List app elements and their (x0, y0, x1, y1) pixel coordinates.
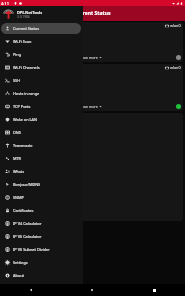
staticText: IP V6 Subnet Divider (13, 247, 50, 252)
staticText: Ping (13, 52, 22, 57)
button[interactable]: Hosts in range (1, 88, 81, 99)
button[interactable]: show more (79, 55, 102, 60)
staticText: Settings (13, 260, 28, 265)
staticText: wlan0 (170, 65, 181, 70)
button[interactable]: DNS (1, 127, 81, 138)
button[interactable]: IP V6 Calculator (1, 231, 81, 242)
button[interactable]: MTR (1, 153, 81, 164)
button[interactable]: IP V4 Calculator (1, 218, 81, 229)
button[interactable]: Traceroute (1, 140, 81, 151)
staticText: IP V4 Calculator (13, 221, 42, 226)
button[interactable]: Ping (1, 49, 81, 60)
button[interactable]: About (1, 270, 81, 281)
button[interactable]: SSH (1, 75, 81, 86)
button[interactable]: Wake on LAN (1, 114, 81, 125)
staticText: Whois (13, 169, 25, 174)
staticText: Wake on LAN (13, 117, 37, 122)
staticText: Bonjour/MDNS (13, 182, 41, 187)
staticText: MTR (13, 156, 22, 161)
button[interactable]: IP V6 Subnet Divider (1, 244, 81, 255)
button[interactable]: wlan0 (165, 65, 181, 70)
staticText: Wi-Fi Scan (13, 39, 32, 44)
button[interactable]: show more (79, 104, 102, 109)
staticText: Certificates (13, 208, 34, 213)
staticText: DNS (13, 130, 21, 135)
staticText: show more (79, 55, 98, 60)
button[interactable]: Bonjour/MDNS (1, 179, 81, 190)
staticText: 3.0.1984 (17, 15, 30, 19)
button[interactable]: SNMP (1, 192, 81, 203)
staticText: SNMP (13, 195, 24, 200)
button[interactable]: Home (61, 284, 123, 296)
staticText: show more (79, 104, 98, 109)
button[interactable]: Wi-Fi Channels (1, 62, 81, 73)
staticText: TCP Ports (13, 104, 31, 109)
staticText: Traceroute (13, 143, 33, 148)
staticText: 4:11 (1, 1, 9, 6)
staticText: DPI-NetTools (17, 10, 43, 15)
staticText: SSH (13, 78, 21, 83)
staticText: Current Status (13, 26, 40, 31)
button[interactable]: wlan0 (165, 23, 181, 28)
button[interactable]: Certificates (1, 205, 81, 216)
staticText: Current Status (74, 10, 111, 17)
button[interactable]: TCP Ports (1, 101, 81, 112)
button[interactable]: Recents (123, 284, 185, 296)
button[interactable]: Settings (1, 257, 81, 268)
staticText: IP V6 Calculator (13, 234, 42, 239)
staticText: Hosts in range (13, 91, 40, 96)
button[interactable]: Whois (1, 166, 81, 177)
button[interactable]: Back (0, 284, 61, 296)
staticText: wlan0 (170, 23, 181, 28)
staticText: About (13, 273, 24, 278)
staticText: Wi-Fi Channels (13, 65, 40, 70)
button[interactable]: Wi-Fi Scan (1, 36, 81, 47)
button[interactable]: Current Status (1, 23, 81, 34)
